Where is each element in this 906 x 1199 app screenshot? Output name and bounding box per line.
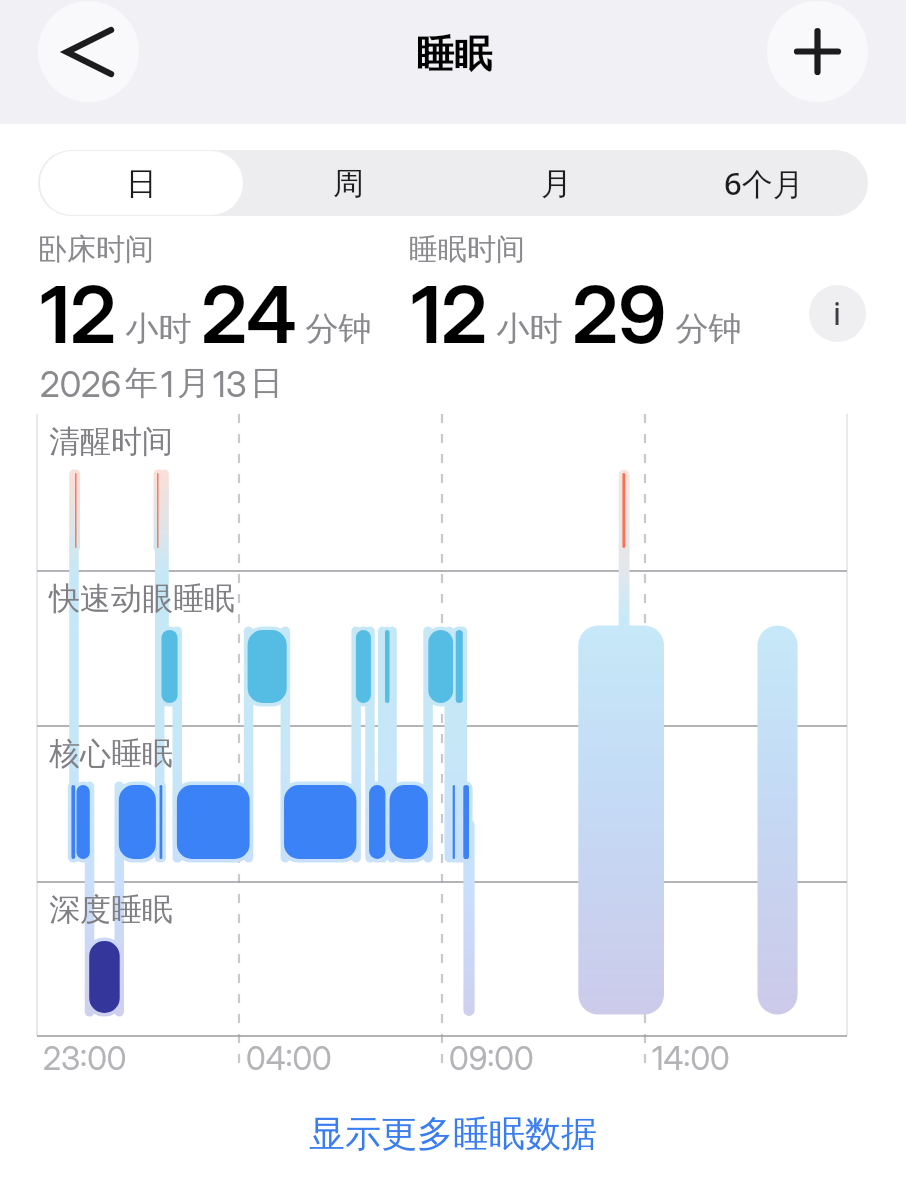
staticText: 月 [541, 164, 572, 203]
staticText: 09:00 [449, 1039, 534, 1078]
staticText: 6个月 [724, 162, 804, 204]
button[interactable]: 显示更多睡眠数据 [289, 1103, 617, 1164]
staticText: 卧床时间 [38, 231, 154, 268]
button[interactable]: Back [38, 1, 139, 102]
button[interactable]: 日 [40, 151, 243, 215]
staticText: 29 [572, 266, 667, 362]
button[interactable]: Add [767, 1, 868, 102]
staticText: 04:00 [246, 1039, 332, 1078]
staticText: 小时 [488, 305, 572, 350]
staticText: 1 [161, 363, 174, 405]
button[interactable]: Info [809, 285, 866, 342]
staticText: 快速动眼睡眠 [49, 579, 235, 618]
staticText: 日 [126, 164, 157, 203]
staticText: 13 [213, 363, 247, 405]
staticText: i [833, 293, 842, 334]
staticText: 核心睡眠 [49, 734, 173, 773]
staticText: 12 [40, 266, 117, 362]
staticText: 月 [177, 362, 210, 404]
button[interactable]: 周 [247, 151, 450, 215]
staticText: 2026 [40, 363, 122, 405]
staticText: 周 [333, 164, 364, 203]
staticText: 12 [411, 266, 488, 362]
staticText: 分钟 [297, 305, 372, 350]
staticText: 日 [250, 362, 283, 404]
staticText: 睡眠 [416, 30, 492, 78]
button[interactable]: 月 [454, 151, 658, 215]
staticText: 年 [125, 362, 158, 404]
staticText: 24 [201, 266, 297, 362]
staticText: 清醒时间 [49, 422, 173, 461]
staticText: 深度睡眠 [49, 890, 173, 929]
staticText: 睡眠时间 [409, 231, 525, 268]
staticText: 小时 [117, 305, 201, 350]
staticText: 23:00 [43, 1039, 127, 1078]
staticText: 分钟 [667, 305, 742, 350]
button[interactable]: 6个月 [662, 151, 866, 215]
staticText: 14:00 [652, 1039, 730, 1078]
staticText: 显示更多睡眠数据 [309, 1111, 597, 1156]
